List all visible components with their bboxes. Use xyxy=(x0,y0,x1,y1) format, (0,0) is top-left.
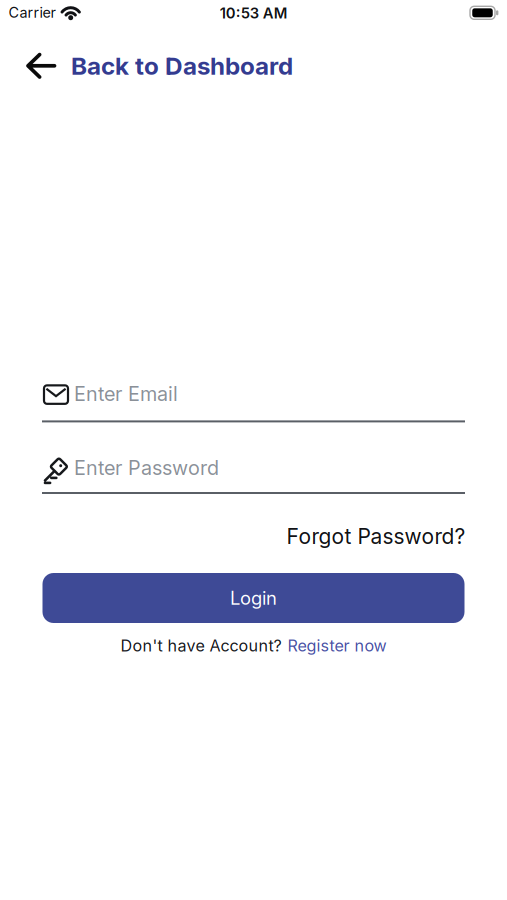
staticText: Enter Email xyxy=(74,382,178,406)
button[interactable]: Login xyxy=(42,573,464,623)
staticText: Don't have Account? xyxy=(120,636,281,655)
staticText: Forgot Password? xyxy=(286,524,465,549)
staticText: Login xyxy=(230,587,277,609)
staticText: Enter Password xyxy=(74,456,219,480)
button[interactable]: Register now xyxy=(287,636,386,655)
staticText: Register now xyxy=(287,636,386,655)
staticText: Back to Dashboard xyxy=(71,51,293,80)
staticText: Carrier xyxy=(8,4,55,21)
button[interactable]: Enter Password xyxy=(42,450,465,486)
button[interactable]: Enter Email xyxy=(42,376,465,412)
staticText: 10:53 AM xyxy=(220,4,288,22)
button[interactable]: Back to Dashboard xyxy=(0,44,507,88)
button[interactable]: Forgot Password? xyxy=(41,521,465,551)
